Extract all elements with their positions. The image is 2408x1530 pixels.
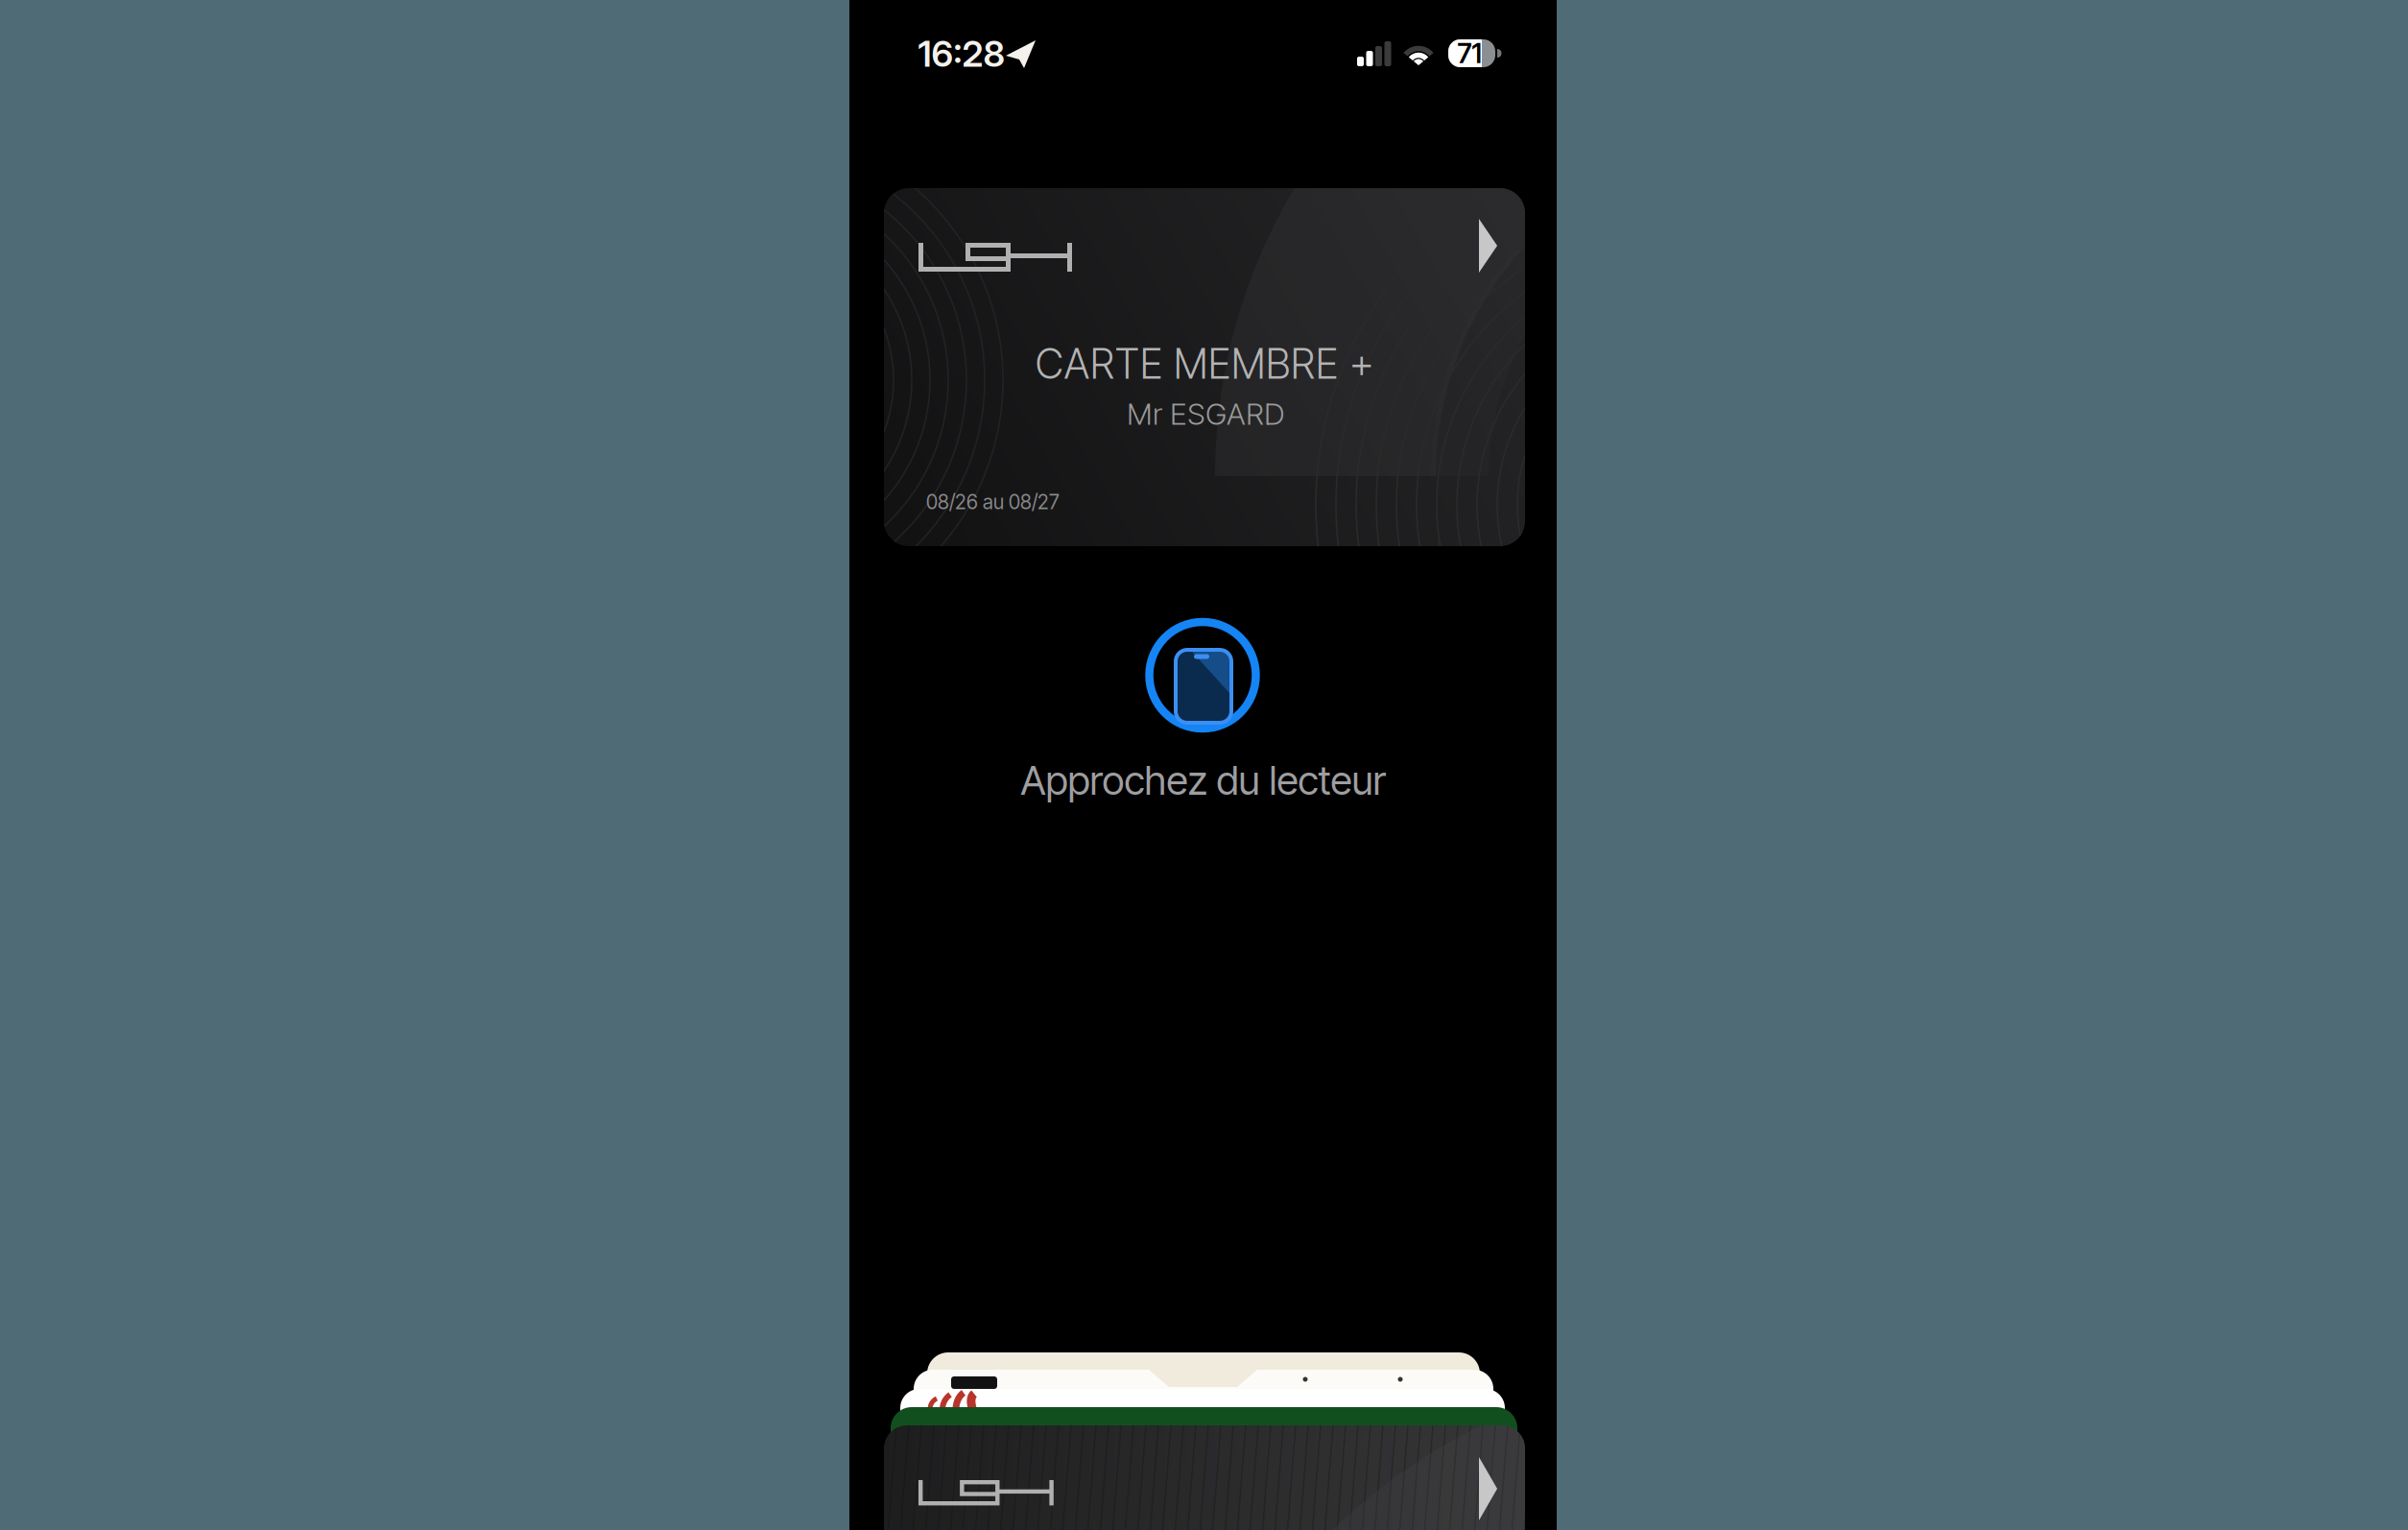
staticText: Mr ESGARD [1127,395,1284,432]
staticText: Approchez du lecteur [1021,756,1385,804]
staticText: CARTE MEMBRE + [1035,339,1374,389]
button[interactable]: Autres cartes [884,1352,1525,1530]
staticText: 71 [1457,37,1482,70]
button[interactable]: CARTE MEMBRE + [884,188,1525,546]
staticText: 08/26 au 08/27 [926,490,1060,514]
staticText: 16:28 [918,32,1005,75]
